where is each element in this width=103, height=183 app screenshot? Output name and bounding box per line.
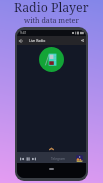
staticText: Telegram xyxy=(51,157,65,161)
staticText: Radio Player xyxy=(14,0,89,16)
button[interactable]: Pause xyxy=(25,154,31,163)
button[interactable]: Next xyxy=(31,154,37,163)
staticText: with data meter xyxy=(24,15,79,25)
button[interactable]: Radio station logo xyxy=(39,47,64,72)
staticText: 9:41 xyxy=(20,31,27,35)
button[interactable]: Share xyxy=(78,36,86,45)
button[interactable]: Expand xyxy=(49,148,54,150)
button[interactable]: Previous xyxy=(19,154,25,163)
button[interactable]: Open Telegram xyxy=(76,155,83,162)
staticText: Live Radio xyxy=(29,38,46,43)
button[interactable]: Back xyxy=(17,36,25,45)
